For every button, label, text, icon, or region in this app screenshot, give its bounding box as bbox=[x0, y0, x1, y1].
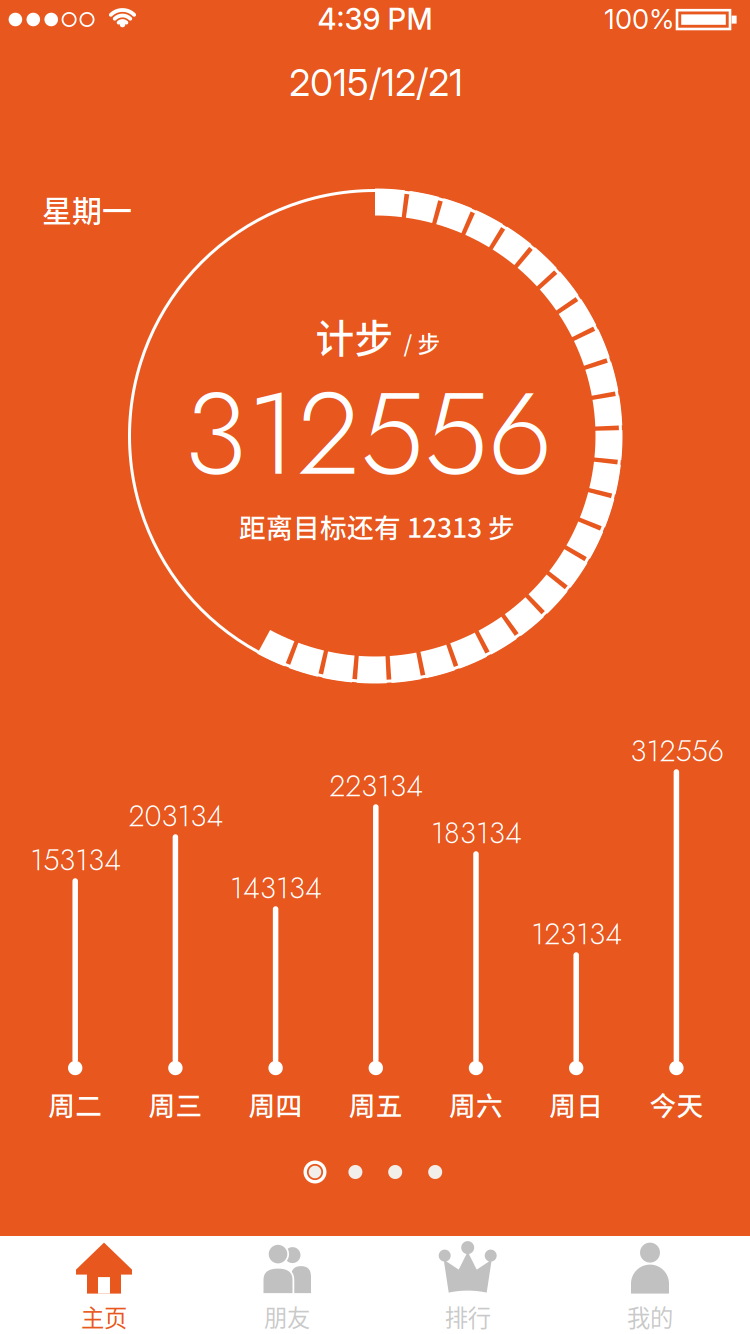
staticText: 计步 bbox=[315, 308, 393, 364]
button[interactable]: Page 1 of 4 bbox=[300, 1158, 450, 1186]
staticText: 主页 bbox=[81, 1300, 127, 1333]
staticText: 100% bbox=[604, 2, 674, 36]
staticText: 距离目标还有 12313 步 bbox=[239, 507, 515, 545]
button[interactable]: 朋友 bbox=[212, 1240, 362, 1334]
staticText: 星期一 bbox=[42, 187, 132, 231]
staticText: 123134 bbox=[531, 913, 622, 955]
staticText: 周四 bbox=[249, 1085, 303, 1123]
staticText: 朋友 bbox=[264, 1300, 310, 1333]
staticText: 4:39 PM bbox=[317, 1, 432, 37]
staticText: 我的 bbox=[627, 1300, 673, 1333]
staticText: 排行 bbox=[445, 1300, 491, 1333]
staticText: 周六 bbox=[449, 1085, 503, 1123]
button[interactable]: 我的 bbox=[575, 1240, 725, 1334]
staticText: 143134 bbox=[230, 867, 322, 909]
staticText: 312556 bbox=[184, 351, 552, 517]
staticText: 223134 bbox=[329, 765, 423, 807]
staticText: 今天 bbox=[649, 1085, 703, 1123]
staticText: 周二 bbox=[48, 1085, 102, 1123]
button[interactable]: 主页 bbox=[29, 1240, 179, 1334]
staticText: / 步 bbox=[403, 326, 440, 359]
staticText: 2015/12/21 bbox=[289, 60, 463, 105]
staticText: 203134 bbox=[128, 795, 223, 837]
staticText: 周三 bbox=[148, 1085, 202, 1123]
staticText: 周五 bbox=[349, 1085, 403, 1123]
staticText: 周日 bbox=[549, 1085, 603, 1123]
staticText: 312556 bbox=[630, 730, 723, 772]
staticText: 153134 bbox=[30, 839, 121, 881]
button[interactable]: 排行 bbox=[393, 1240, 543, 1334]
staticText: 183134 bbox=[431, 812, 522, 854]
